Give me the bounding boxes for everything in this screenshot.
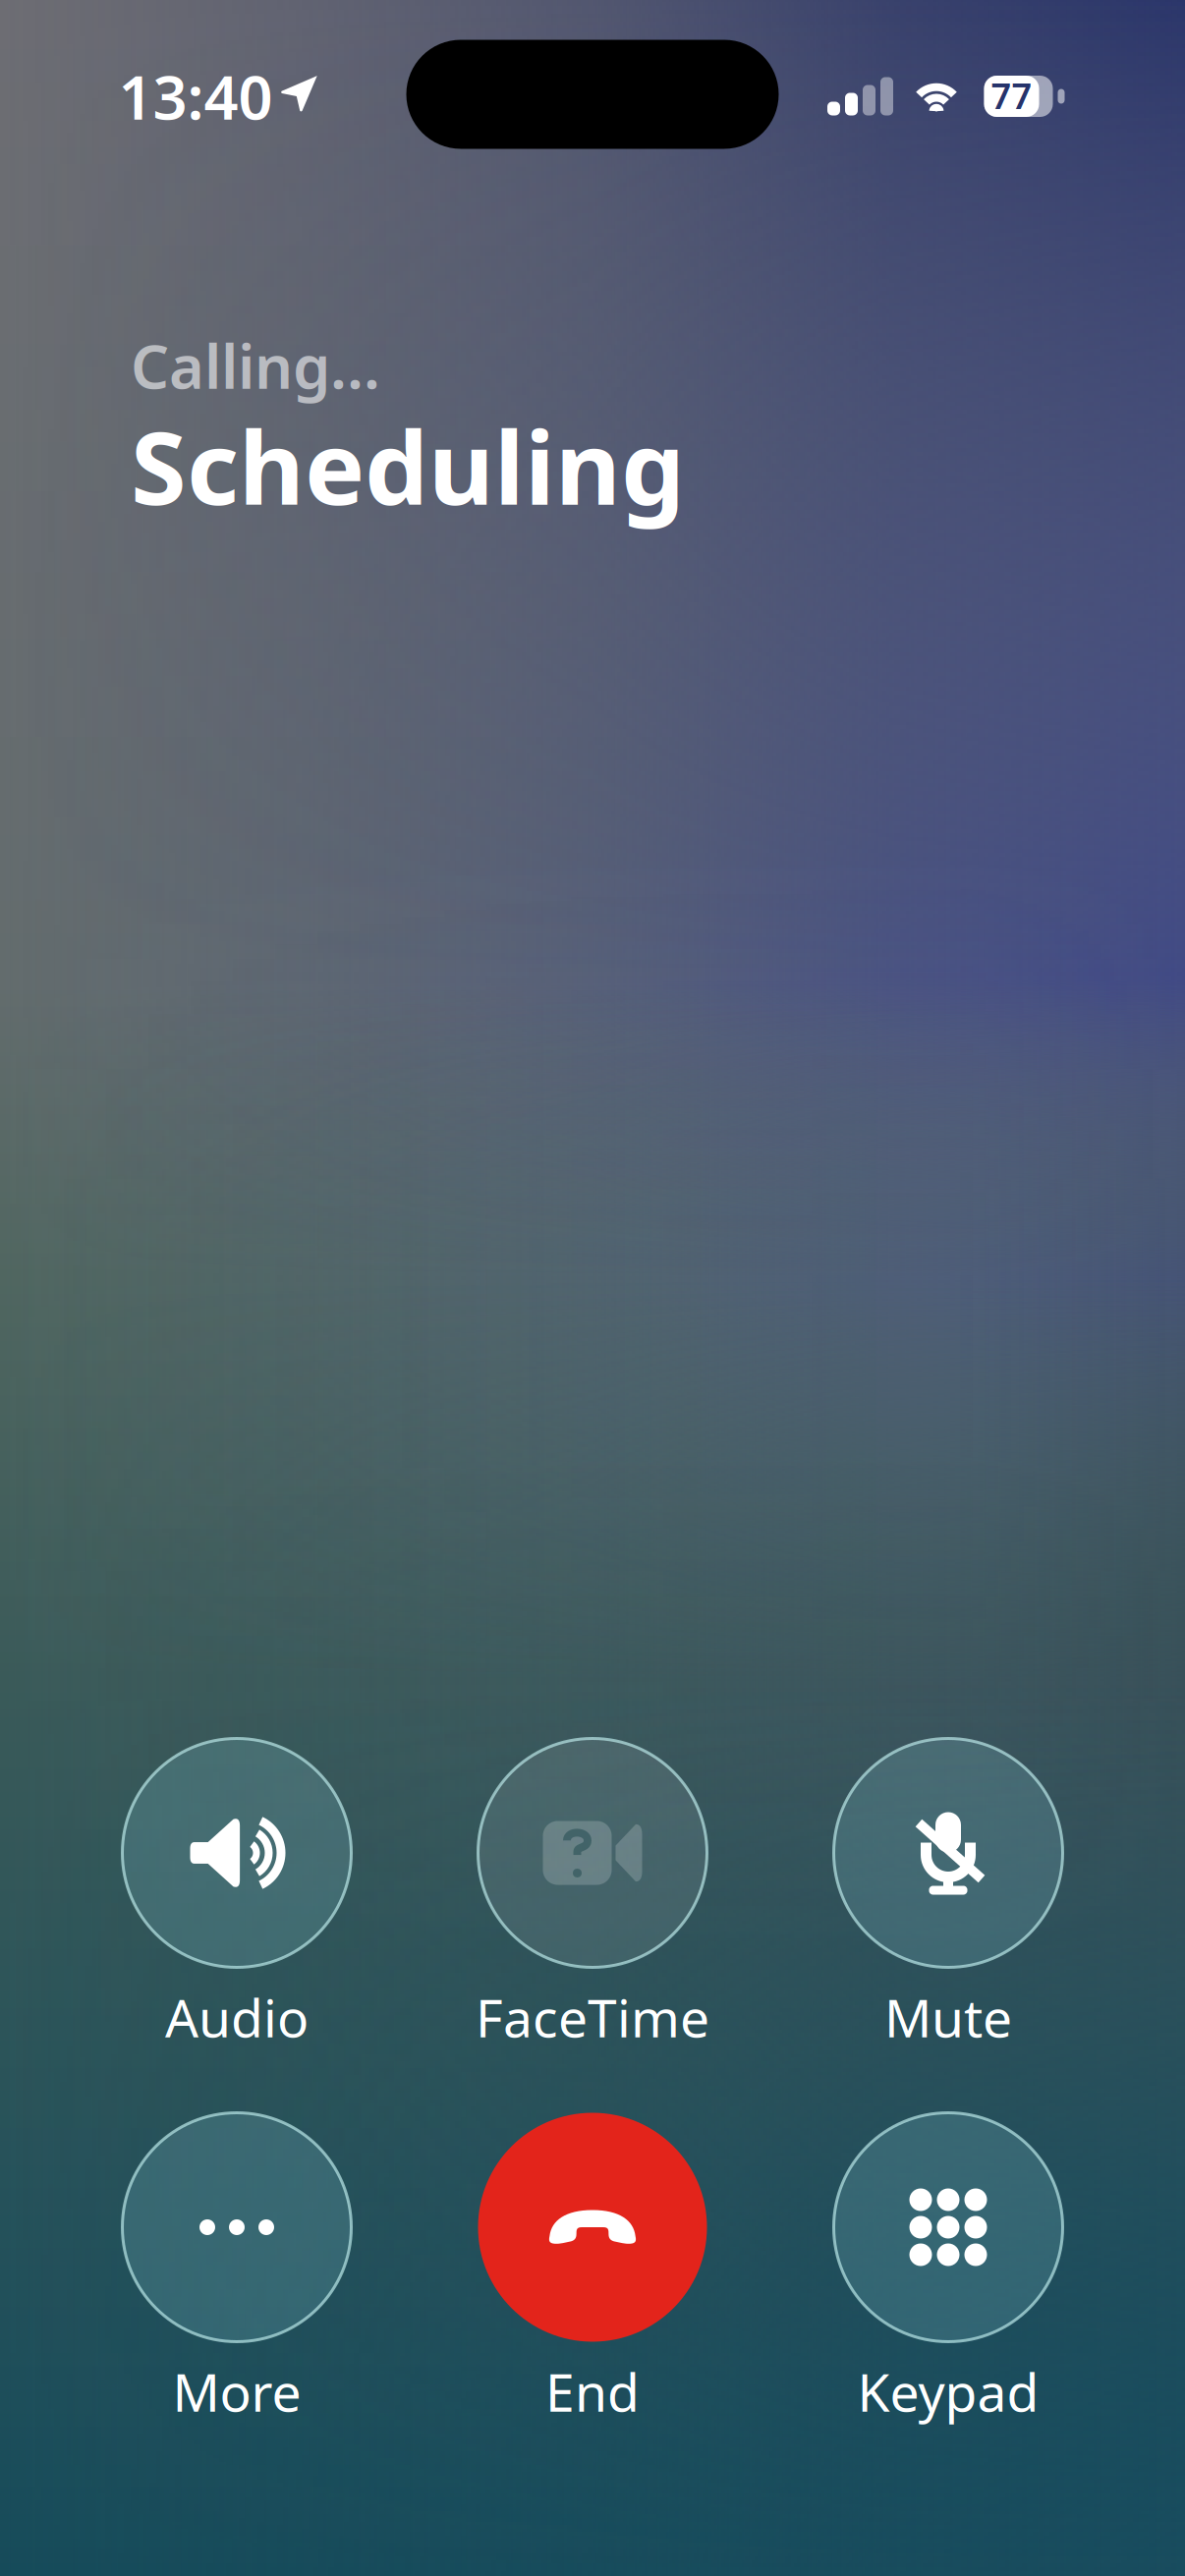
staticText: More (172, 2357, 301, 2426)
staticText: Calling... (131, 325, 380, 405)
button[interactable]: End (0, 0, 1185, 2576)
button[interactable]: Audio (0, 0, 1185, 2576)
button[interactable]: FaceTime (0, 0, 1185, 2576)
button[interactable]: Mute (0, 0, 1185, 2576)
staticText: FaceTime (476, 1982, 709, 2052)
staticText: Keypad (857, 2357, 1039, 2426)
staticText: Scheduling (131, 399, 685, 533)
staticText: 13:40 (118, 56, 273, 136)
staticText: 77 (991, 72, 1032, 119)
staticText: End (545, 2357, 640, 2426)
staticText: Audio (165, 1982, 309, 2052)
button[interactable]: More (0, 0, 1185, 2576)
button[interactable]: Keypad (0, 0, 1185, 2576)
staticText: Mute (884, 1982, 1012, 2052)
